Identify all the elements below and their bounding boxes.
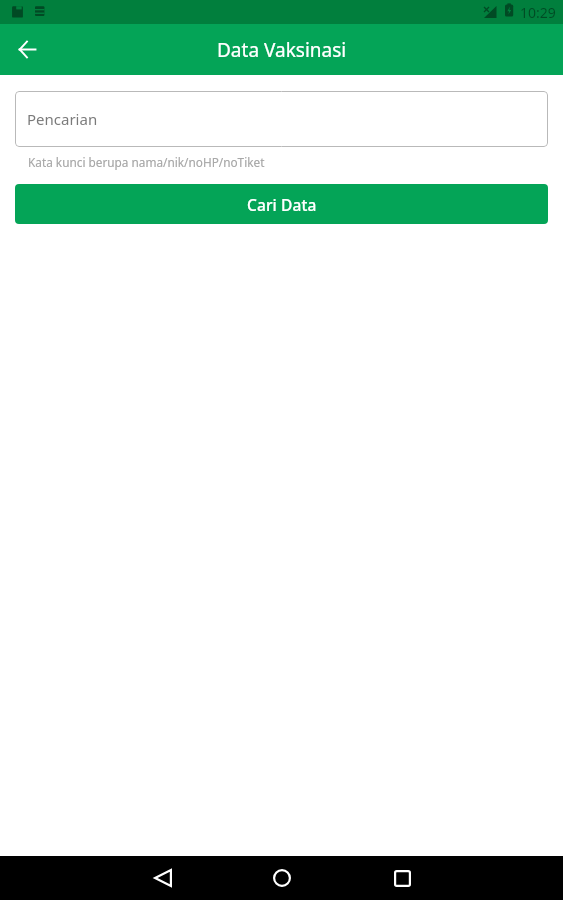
- staticText: 10:29: [520, 3, 556, 22]
- button[interactable]: Recents: [380, 856, 424, 900]
- staticText: Pencarian: [27, 109, 98, 129]
- button[interactable]: Pencarian: [15, 91, 548, 147]
- staticText: Data Vaksinasi: [217, 37, 347, 63]
- button[interactable]: Back: [141, 856, 185, 900]
- staticText: Cari Data: [247, 194, 317, 215]
- staticText: Kata kunci berupa nama/nik/noHP/noTiket: [28, 154, 265, 170]
- button[interactable]: Home: [260, 856, 304, 900]
- button[interactable]: Back: [9, 32, 45, 68]
- button[interactable]: Cari Data: [15, 184, 548, 224]
